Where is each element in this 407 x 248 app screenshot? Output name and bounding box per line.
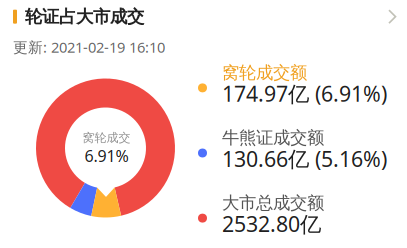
staticText: 大市总成交额 bbox=[222, 192, 324, 214]
button[interactable]: 窝轮成交额 bbox=[196, 65, 405, 111]
button[interactable]: 牛熊证成交额 bbox=[196, 130, 405, 176]
staticText: 2532.80亿 bbox=[222, 210, 321, 238]
button[interactable]: 大市总成交额 bbox=[196, 195, 405, 241]
staticText: 更新: 2021-02-19 16:10 bbox=[13, 37, 165, 57]
staticText: 130.66亿 (5.16%) bbox=[222, 144, 387, 173]
staticText: 174.97亿 (6.91%) bbox=[222, 79, 387, 108]
staticText: 牛熊证成交额 bbox=[222, 127, 324, 148]
button[interactable]: 轮证占大市成交 bbox=[0, 0, 407, 27]
staticText: 窝轮成交额 bbox=[222, 62, 307, 83]
staticText: 6.91% bbox=[84, 145, 128, 166]
staticText: 窝轮成交 bbox=[82, 130, 130, 145]
staticText: 轮证占大市成交 bbox=[25, 6, 144, 27]
